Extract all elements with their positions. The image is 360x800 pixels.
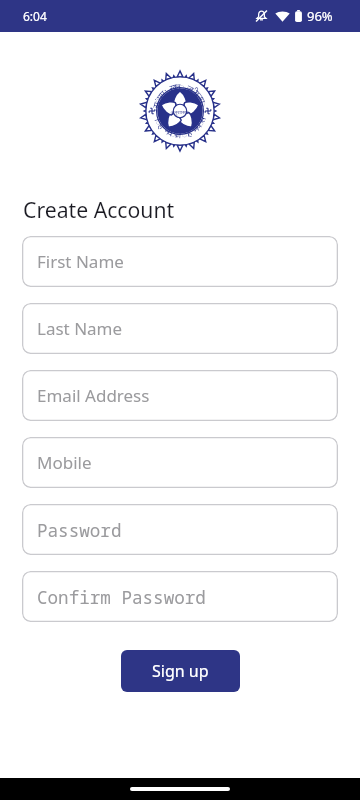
staticText: First Name xyxy=(37,250,124,273)
button[interactable]: Sign up xyxy=(121,650,240,692)
staticText: Mobile xyxy=(37,451,92,474)
button[interactable]: Password xyxy=(22,504,338,555)
staticText: Password xyxy=(37,518,122,542)
staticText: Confirm Password xyxy=(37,585,206,609)
staticText: 6:04 xyxy=(23,8,47,24)
button[interactable]: Mobile xyxy=(22,437,338,488)
button[interactable]: Email Address xyxy=(22,370,338,421)
button[interactable]: First Name xyxy=(22,236,338,287)
staticText: 96% xyxy=(307,7,333,25)
button[interactable]: Confirm Password xyxy=(22,571,338,622)
staticText: Last Name xyxy=(37,317,123,340)
staticText: Create Account xyxy=(23,195,175,224)
staticText: Email Address xyxy=(37,384,150,407)
staticText: Sign up xyxy=(152,660,209,682)
button[interactable]: Last Name xyxy=(22,303,338,354)
